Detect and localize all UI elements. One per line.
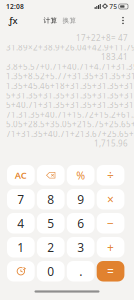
staticText: 71+31.35+40.71+213.67+25.65+3 — [6, 128, 134, 139]
staticText: 1,715.96 — [94, 138, 128, 149]
button[interactable]: Scientific mode — [4, 13, 22, 28]
staticText: 12:08 — [6, 2, 24, 11]
staticText: × — [107, 191, 114, 207]
button[interactable]: . — [67, 261, 94, 281]
staticText: 5+40.71+31.35+31.35+31.35+31.3 — [6, 100, 134, 110]
button[interactable]: More options — [114, 13, 132, 28]
staticText: 8 — [47, 191, 54, 207]
staticText: 3.8+5.57+0.71+40.71+4.71+31.35+3 — [6, 61, 134, 72]
button[interactable]: ÷ — [97, 165, 124, 185]
staticText: = — [107, 263, 114, 279]
staticText: 31.89×2+38.9+26.04+42.9+11.79= — [6, 42, 134, 53]
staticText: 7 — [17, 191, 24, 207]
button[interactable]: 5 — [37, 213, 65, 233]
staticText: . — [79, 263, 82, 279]
staticText: 计算 — [43, 16, 57, 25]
button[interactable]: 0 — [37, 261, 65, 281]
button[interactable]: 7 — [7, 189, 35, 209]
staticText: 17+22+8= 47 — [76, 32, 128, 43]
staticText: 183.41 — [101, 52, 128, 62]
staticText: AC — [15, 169, 27, 181]
button[interactable]: 换算 — [61, 13, 77, 28]
staticText: 5+31.35+31.35+31.35+31.35+31.3 — [6, 90, 134, 101]
staticText: ÷ — [107, 167, 114, 183]
staticText: − — [107, 215, 114, 231]
button[interactable]: 2 — [37, 237, 65, 257]
button[interactable]: % — [67, 165, 94, 185]
button[interactable]: 1 — [7, 237, 35, 257]
button[interactable]: × — [97, 189, 124, 209]
button[interactable] — [37, 165, 65, 185]
staticText: 1.35+45.46+18+31.35+31.35+31.3 — [6, 80, 134, 91]
button[interactable]: 3 — [67, 237, 94, 257]
staticText: 3 — [77, 239, 84, 255]
staticText: 5.05+28.5+35.05+215.75+25.65+ — [6, 119, 134, 129]
staticText: 9 — [77, 191, 84, 207]
staticText: 1 — [17, 239, 24, 255]
staticText: 5 — [47, 215, 54, 231]
button[interactable]: 计算 — [42, 13, 58, 28]
staticText: % — [76, 168, 85, 182]
button[interactable]: 6 — [67, 213, 94, 233]
button[interactable]: 8 — [37, 189, 65, 209]
staticText: + — [107, 239, 114, 255]
staticText: 2 — [47, 239, 54, 255]
staticText: 6 — [77, 215, 84, 231]
staticText: 75 — [109, 2, 117, 11]
staticText: 4 — [17, 215, 24, 231]
staticText: 1.35+8.52+5.77+31.35+31.35+31.3 — [6, 71, 134, 81]
button[interactable]: AC — [7, 165, 35, 185]
button[interactable]: = — [97, 261, 124, 281]
button[interactable] — [7, 261, 35, 281]
staticText: 71.31.35+40.71+15.72+15.2+61.3 — [6, 109, 134, 120]
staticText: 0 — [47, 263, 54, 279]
staticText: ƒx — [8, 14, 17, 27]
button[interactable]: 4 — [7, 213, 35, 233]
staticText: 换算 — [62, 16, 76, 25]
button[interactable]: + — [97, 237, 124, 257]
button[interactable]: − — [97, 213, 124, 233]
button[interactable]: 9 — [67, 189, 94, 209]
